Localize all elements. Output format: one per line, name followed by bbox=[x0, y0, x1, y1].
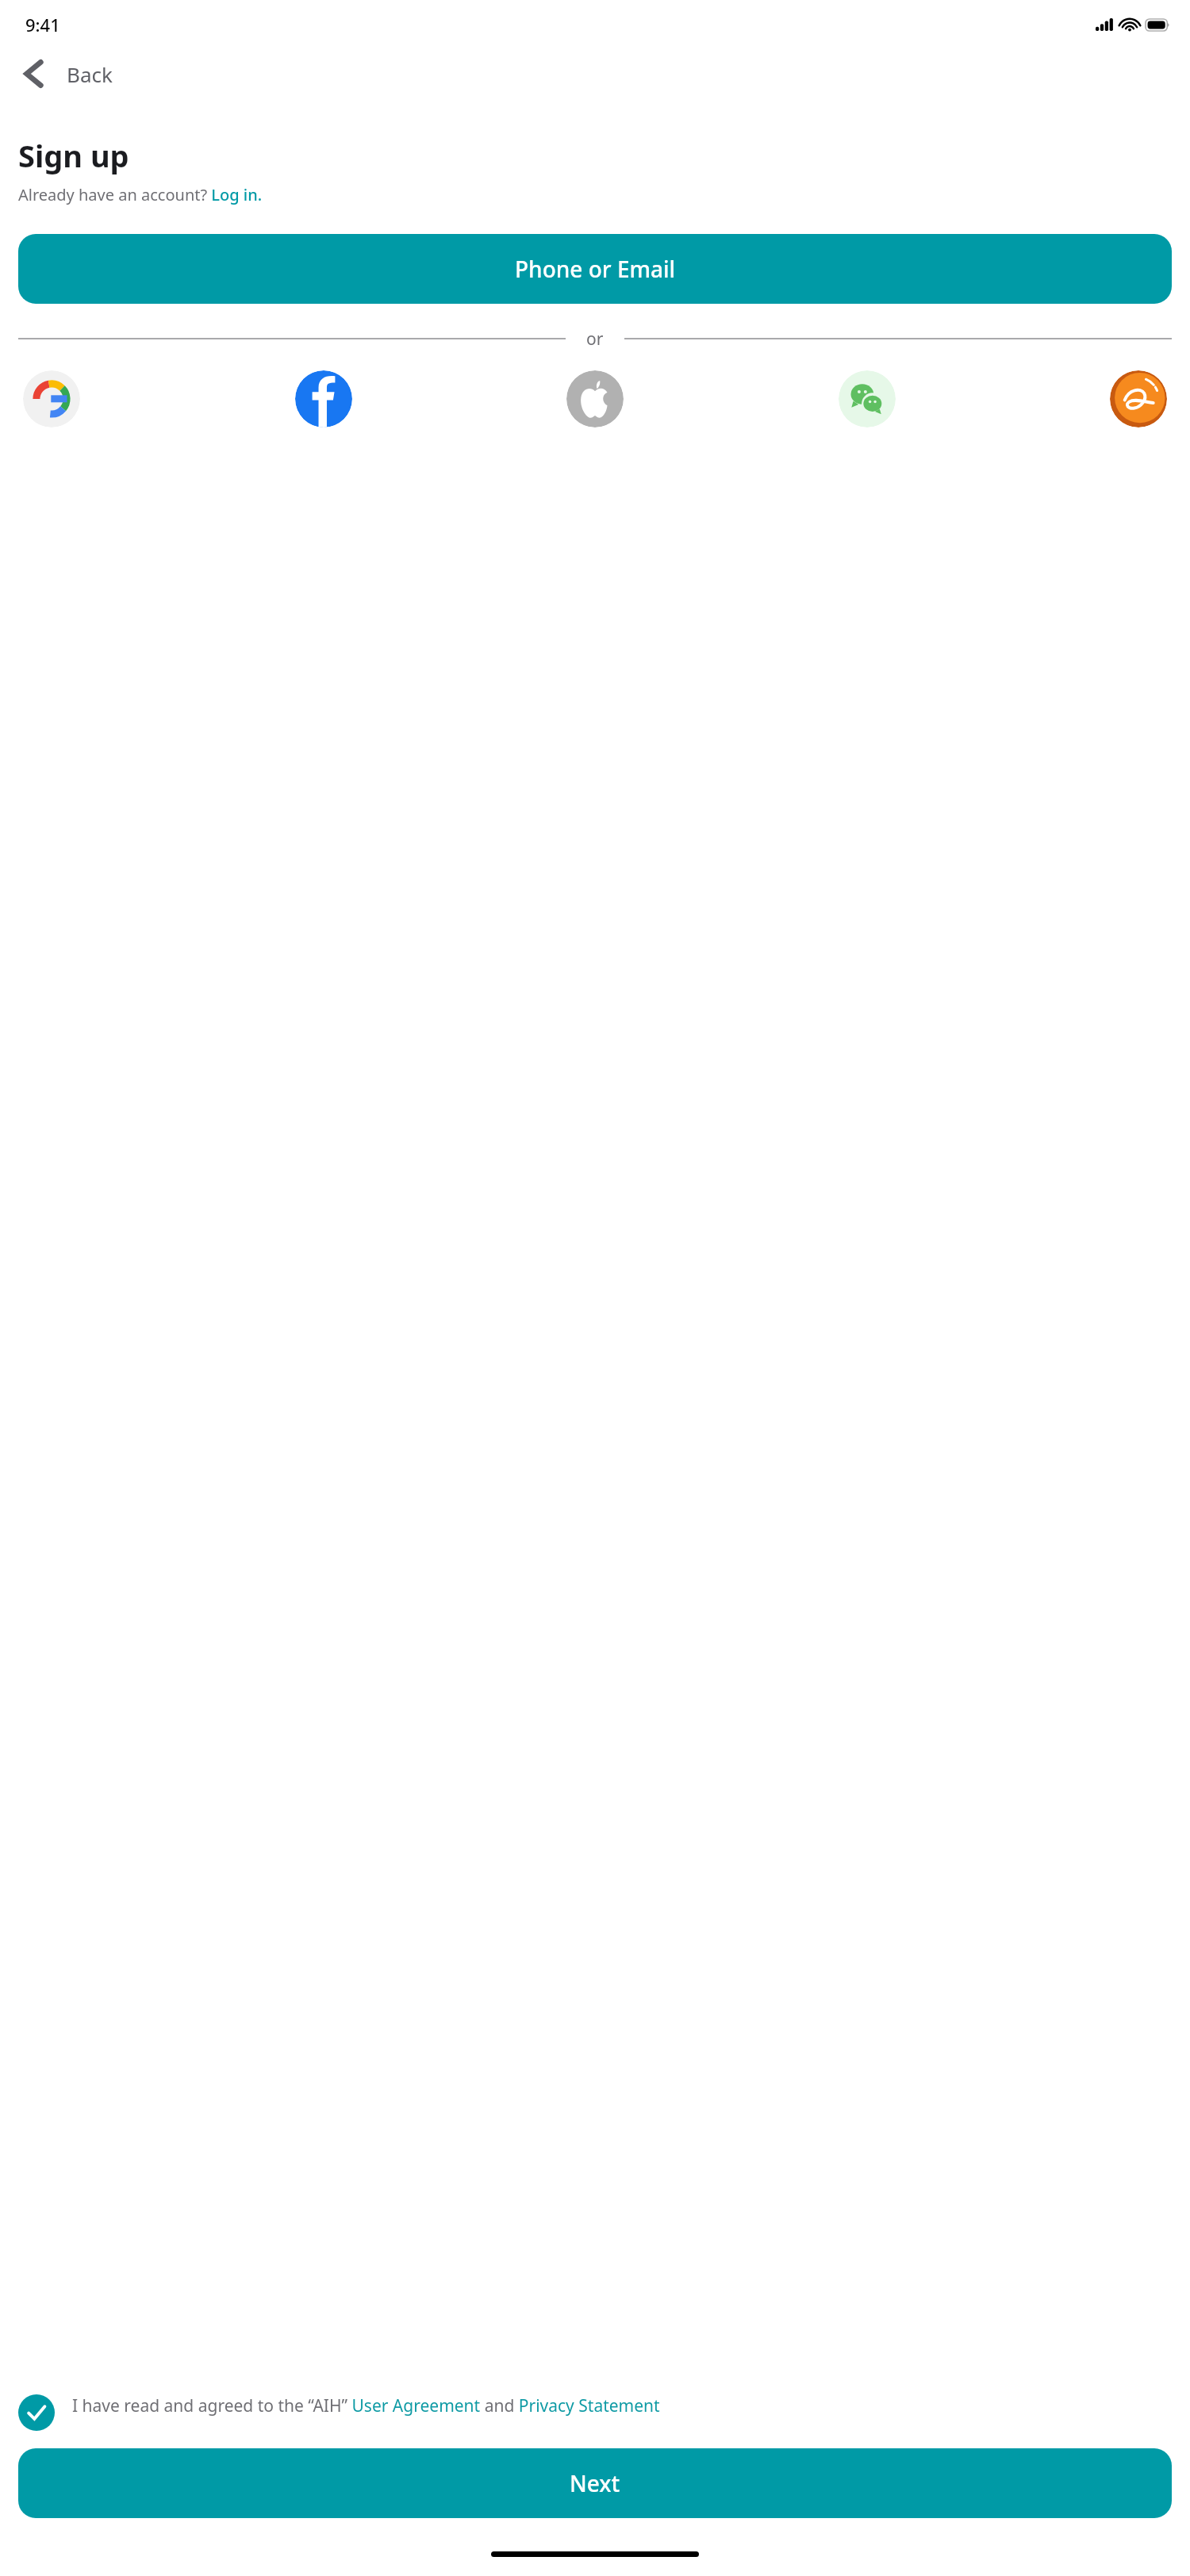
button[interactable]: Back bbox=[17, 49, 1190, 98]
staticText: or bbox=[586, 328, 604, 350]
staticText: Sign up bbox=[18, 135, 129, 176]
staticText: 9:41 bbox=[25, 13, 60, 36]
staticText: Phone or Email bbox=[515, 254, 676, 284]
button[interactable]: Sign up with Alipay bbox=[1110, 370, 1167, 427]
button[interactable]: Sign up with Facebook bbox=[295, 370, 352, 427]
button[interactable]: Sign up with WeChat bbox=[839, 370, 896, 427]
other: Agree checkbox bbox=[26, 2402, 47, 2423]
button[interactable]: Sign up with Apple bbox=[566, 370, 624, 427]
staticText: I have read and agreed to the “AIH” User… bbox=[72, 2394, 660, 2417]
button[interactable]: Agree checkbox bbox=[18, 2394, 1172, 2431]
staticText: Next bbox=[570, 2468, 620, 2498]
button[interactable]: Sign up with Google bbox=[23, 370, 80, 427]
other: Back bbox=[24, 60, 44, 87]
button[interactable]: Phone or Email bbox=[18, 234, 1172, 304]
staticText: Already have an account? Log in. bbox=[18, 184, 263, 205]
staticText: Back bbox=[67, 60, 113, 88]
button[interactable]: Next bbox=[18, 2448, 1172, 2518]
